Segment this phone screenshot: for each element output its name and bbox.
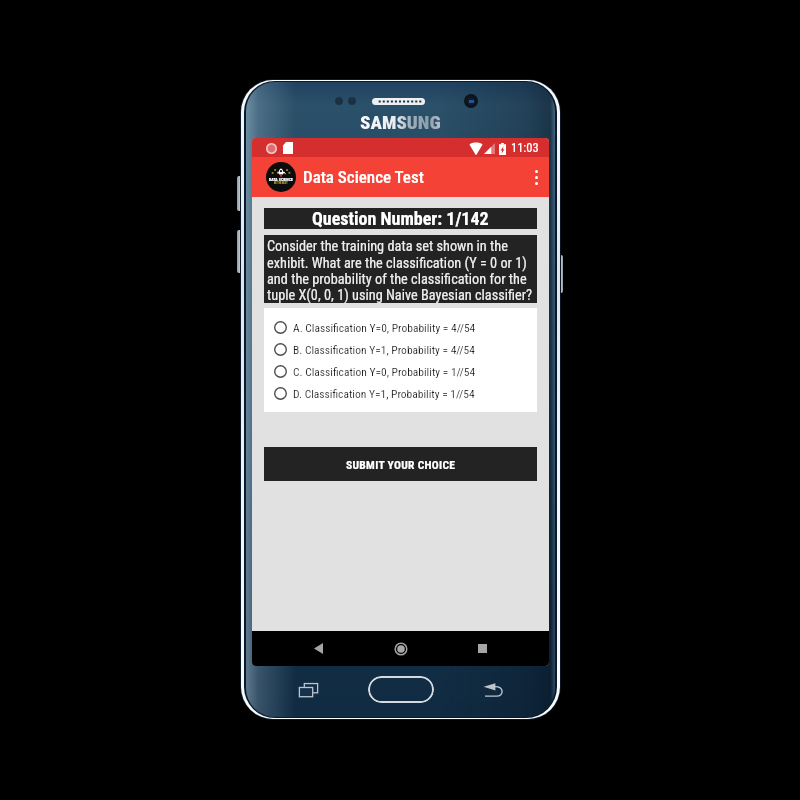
button[interactable]: Recents	[460, 631, 505, 666]
button[interactable]: Question Number: 1/142	[264, 208, 537, 229]
staticText: Data Science Test	[303, 167, 424, 187]
staticText: Question Number: 1/142	[312, 208, 489, 229]
button[interactable]: Back	[296, 631, 341, 666]
staticText: SUBMIT YOUR CHOICE	[346, 458, 456, 471]
button[interactable]: SUBMIT YOUR CHOICE	[264, 447, 537, 481]
button[interactable]: A. Classification Y=0, Probability = 4//…	[274, 317, 531, 338]
staticText: DATA SCIENCE	[269, 177, 293, 181]
staticText: BE THE BEST	[274, 182, 288, 185]
button[interactable]: Home	[378, 631, 423, 666]
staticText: C. Classification Y=0, Probability = 1//…	[293, 365, 476, 378]
staticText: Consider the training data set shown in …	[267, 238, 537, 303]
staticText: D. Classification Y=1, Probability = 1//…	[293, 387, 475, 400]
button[interactable]: D. Classification Y=1, Probability = 1//…	[274, 382, 531, 404]
staticText: 11:03	[511, 140, 539, 155]
button[interactable]: C. Classification Y=0, Probability = 1//…	[274, 360, 531, 382]
staticText: SAMSUNG	[360, 111, 441, 129]
staticText: A. Classification Y=0, Probability = 4//…	[293, 321, 476, 334]
staticText: B. Classification Y=1, Probability = 4//…	[293, 343, 475, 356]
button[interactable]: More options	[523, 157, 549, 197]
button[interactable]: B. Classification Y=1, Probability = 4//…	[274, 338, 531, 360]
